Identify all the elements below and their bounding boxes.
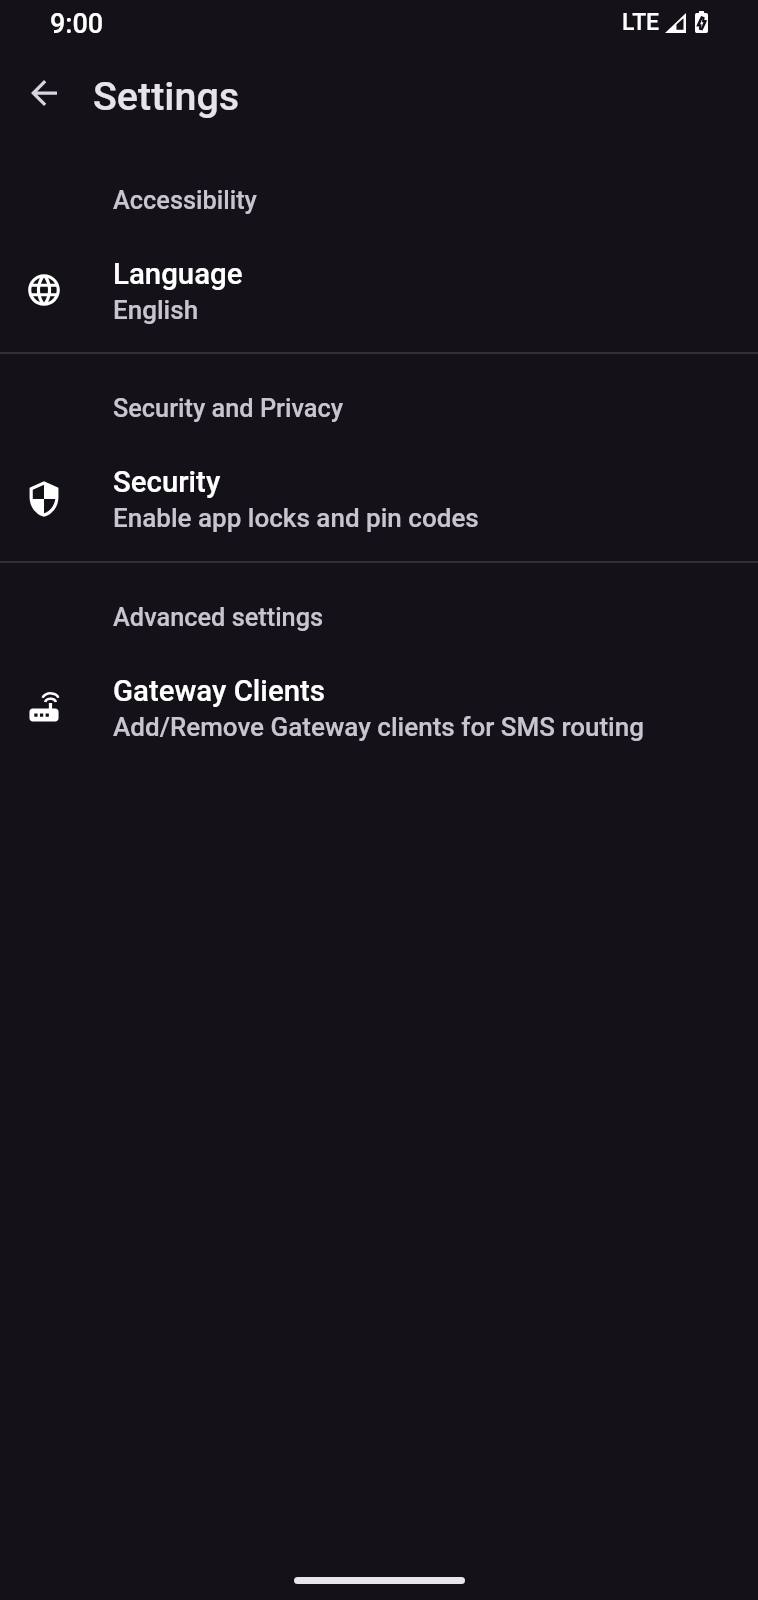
- button[interactable]: Language: [0, 240, 758, 352]
- staticText: Enable app locks and pin codes: [113, 503, 479, 533]
- staticText: Security and Privacy: [113, 394, 344, 424]
- staticText: Settings: [93, 73, 240, 119]
- staticText: Accessibility: [113, 186, 257, 216]
- staticText: Gateway Clients: [113, 674, 325, 708]
- staticText: English: [113, 295, 199, 325]
- staticText: Add/Remove Gateway clients for SMS routi…: [113, 712, 644, 742]
- staticText: Language: [113, 257, 243, 291]
- staticText: Advanced settings: [113, 603, 324, 633]
- staticText: LTE: [622, 9, 660, 36]
- staticText: Security: [113, 465, 221, 499]
- staticText: 9:00: [50, 8, 104, 40]
- button[interactable]: Back: [8, 57, 80, 129]
- button[interactable]: Gateway Clients: [0, 657, 758, 770]
- button[interactable]: Security: [0, 448, 758, 560]
